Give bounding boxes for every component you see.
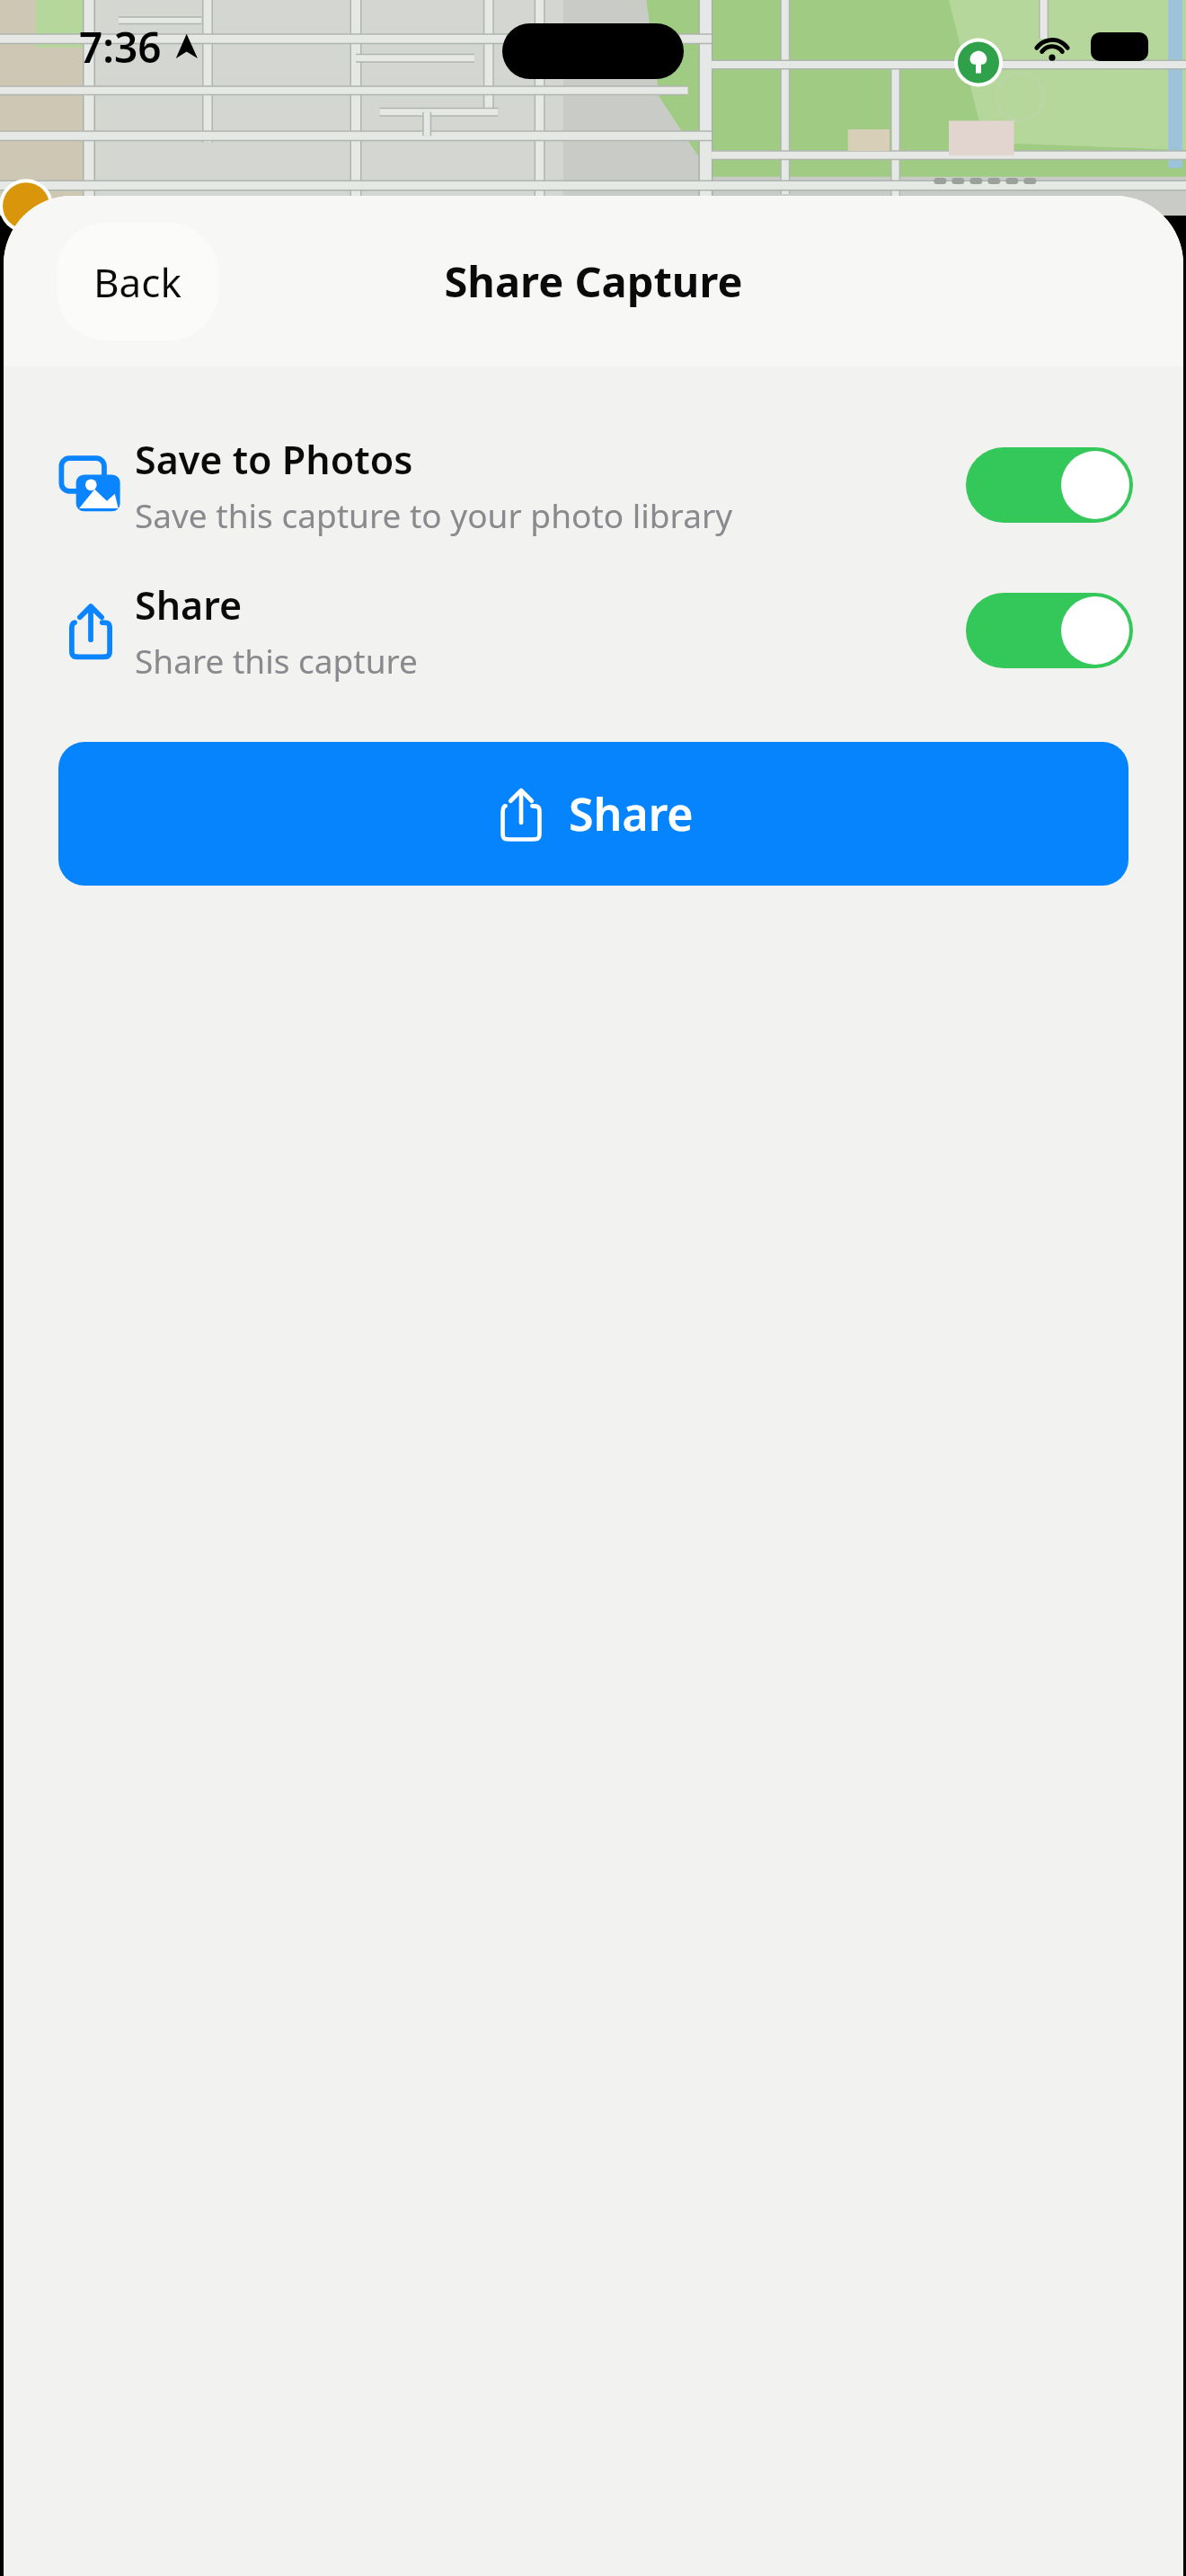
- staticText: Save this capture to your photo library: [135, 492, 733, 537]
- staticText: Share Capture: [444, 252, 743, 310]
- staticText: Share this capture: [135, 638, 418, 683]
- button[interactable]: Share: [58, 742, 1128, 886]
- staticText: Share: [569, 783, 694, 844]
- staticText: Share: [135, 578, 243, 631]
- staticText: Back: [93, 255, 181, 309]
- button[interactable]: Share: [4, 568, 1183, 693]
- button[interactable]: Save to Photos: [4, 422, 1183, 548]
- staticText: Save to Photos: [135, 433, 413, 486]
- button[interactable]: [966, 447, 1133, 523]
- button[interactable]: Back: [57, 223, 218, 340]
- button[interactable]: [966, 593, 1133, 668]
- staticText: 7:36: [79, 19, 162, 75]
